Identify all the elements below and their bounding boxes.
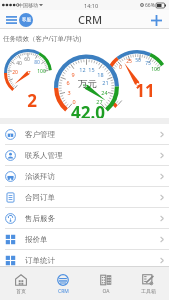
staticText: 24 <box>101 89 108 96</box>
staticText: 60 <box>24 56 30 63</box>
staticText: 工具箱 <box>141 288 156 294</box>
button[interactable]: 合同订单 <box>0 187 169 207</box>
button[interactable]: 洽谈拜访 <box>0 166 169 186</box>
staticText: 客户管理 <box>25 130 55 139</box>
staticText: 80 <box>34 59 40 66</box>
button[interactable]: 首页 <box>0 273 42 295</box>
button[interactable]: OA <box>85 273 127 296</box>
staticText: 首页 <box>16 288 26 294</box>
staticText: 11 <box>135 79 155 102</box>
staticText: 报价单 <box>25 235 48 244</box>
staticText: 3 <box>67 89 71 96</box>
staticText: CRM <box>58 288 69 295</box>
staticText: 0 <box>119 64 122 71</box>
staticText: 订单统计 <box>25 256 55 265</box>
staticText: 42.0 <box>71 101 105 124</box>
staticText: 20 <box>12 69 18 76</box>
staticText: 售后服务 <box>25 214 55 223</box>
button[interactable]: 售后服务 <box>0 208 169 228</box>
staticText: 25 <box>126 58 132 65</box>
button[interactable]: CRM <box>42 273 84 296</box>
staticText: 12 <box>79 66 86 73</box>
staticText: 中国移动 <box>18 2 38 8</box>
button[interactable]: Add <box>148 12 164 28</box>
staticText: 2 <box>27 89 37 112</box>
button[interactable]: 订单统计 <box>0 250 169 270</box>
staticText: 14:10 <box>84 2 99 9</box>
button[interactable]: Menu <box>4 13 18 27</box>
button[interactable]: 联系人管理 <box>0 145 169 165</box>
staticText: 洽谈拜访 <box>25 172 55 181</box>
staticText: 100 <box>151 66 160 73</box>
staticText: 50 <box>135 57 141 64</box>
staticText: 75 <box>145 60 151 67</box>
button[interactable]: 报价单 <box>0 229 169 249</box>
staticText: 合同订单 <box>25 193 55 202</box>
button[interactable]: 工具箱 <box>127 273 169 295</box>
staticText: 0 <box>72 98 76 105</box>
staticText: 27 <box>96 98 103 105</box>
staticText: 18 <box>97 71 104 78</box>
staticText: OA <box>102 288 110 295</box>
staticText: CRM <box>78 12 103 27</box>
button[interactable]: 客户管理 <box>0 124 169 144</box>
staticText: 40 <box>16 60 22 67</box>
staticText: 万元 <box>78 78 97 90</box>
staticText: 100 <box>37 68 46 75</box>
staticText: 21 <box>102 79 109 86</box>
staticText: 9 <box>71 71 75 78</box>
staticText: 联系人管理 <box>25 151 63 160</box>
staticText: 66% <box>145 2 155 9</box>
staticText: 任务绩效（客户/订单/拜访) <box>3 34 82 43</box>
button[interactable]: 客服 <box>19 13 33 27</box>
staticText: 6 <box>66 79 70 86</box>
staticText: 客服 <box>22 17 31 23</box>
staticText: 15 <box>88 66 95 73</box>
